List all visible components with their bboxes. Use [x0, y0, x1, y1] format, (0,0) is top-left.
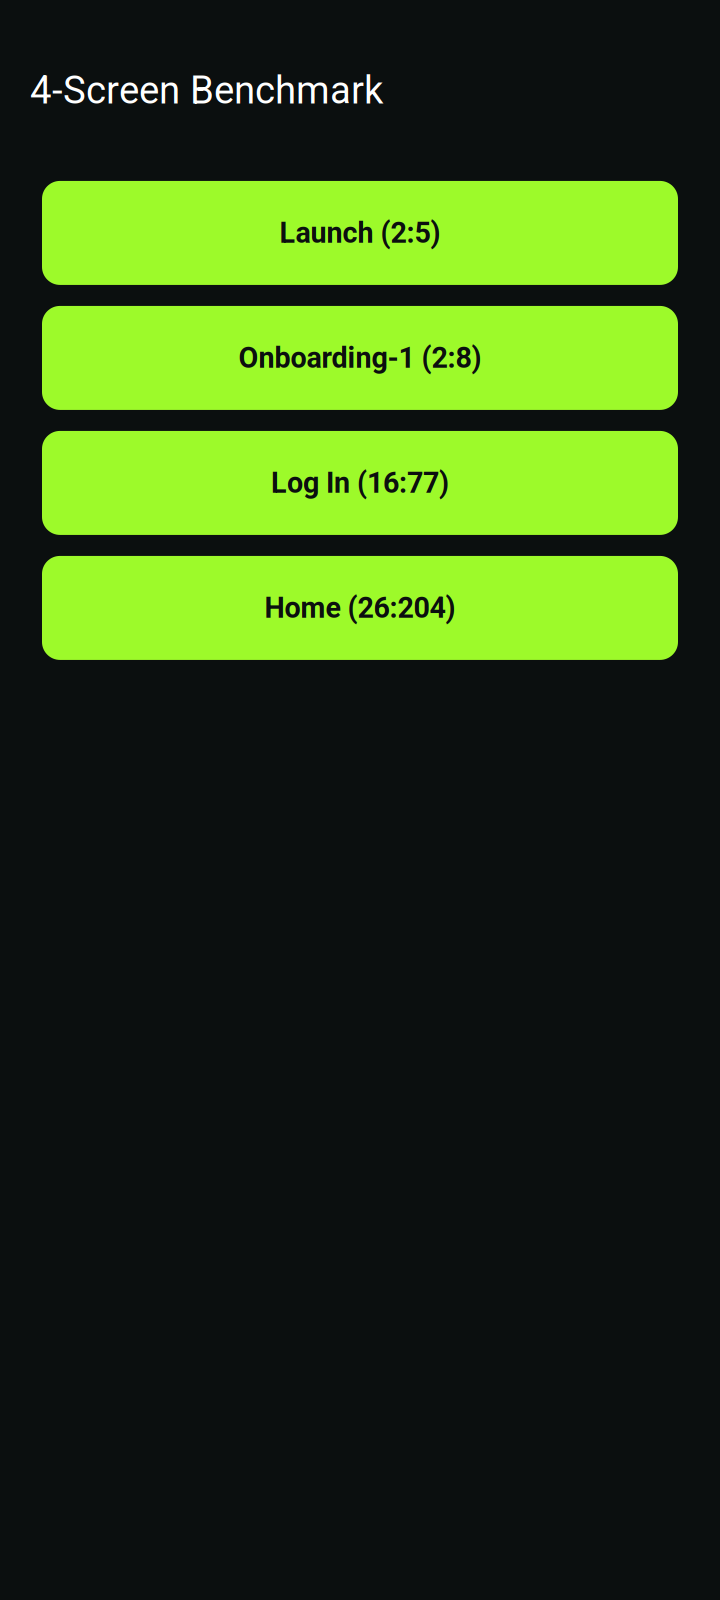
button[interactable]: Launch (2:5) — [42, 181, 678, 285]
staticText: Home (26:204) — [264, 591, 455, 625]
staticText: Onboarding-1 (2:8) — [238, 341, 481, 375]
button[interactable]: Home (26:204) — [42, 556, 678, 660]
staticText: 4-Screen Benchmark — [30, 68, 383, 113]
staticText: Log In (16:77) — [271, 466, 449, 500]
button[interactable]: Log In (16:77) — [42, 431, 678, 535]
staticText: Launch (2:5) — [279, 216, 440, 250]
button[interactable]: Onboarding-1 (2:8) — [42, 306, 678, 410]
